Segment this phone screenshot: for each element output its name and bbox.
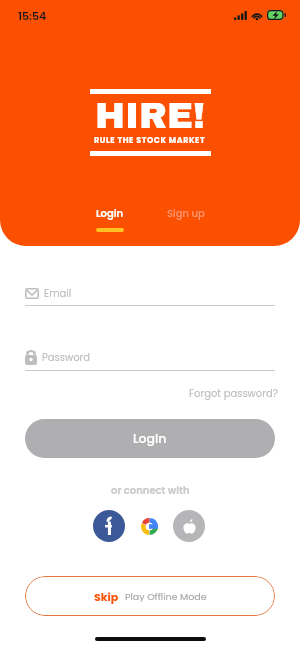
staticText: Sign up <box>167 206 205 220</box>
staticText: RULE THE STOCK MARKET <box>94 135 206 146</box>
button[interactable]: Sign in with Google <box>133 510 165 542</box>
staticText: Password <box>42 350 91 364</box>
staticText: Login <box>96 206 124 220</box>
staticText: 15:54 <box>18 8 47 23</box>
staticText: Email <box>44 286 72 300</box>
button[interactable]: Login <box>25 419 275 458</box>
staticText: Forgot password? <box>189 386 278 400</box>
staticText: HIRE! <box>95 96 205 135</box>
button[interactable]: Forgot password? <box>189 386 278 400</box>
staticText: or connect with <box>111 483 190 497</box>
staticText: Skip <box>94 589 119 604</box>
button[interactable]: Sign up <box>167 206 205 220</box>
staticText: Login <box>133 430 167 447</box>
staticText: Play Offline Mode <box>125 590 207 603</box>
button[interactable]: Login <box>96 206 124 232</box>
button[interactable]: Skip <box>25 576 275 616</box>
button[interactable]: Sign in with Apple <box>173 510 205 542</box>
button[interactable]: Sign in with Facebook <box>93 510 125 542</box>
